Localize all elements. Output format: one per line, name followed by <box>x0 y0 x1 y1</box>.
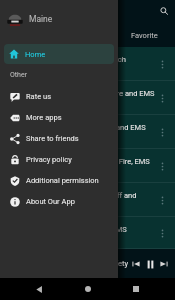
staticText: Hancock County Police and EMS <box>37 123 146 132</box>
staticText: Androscoggin County Fire and EMS <box>37 89 155 98</box>
staticText: Kennebec County Fire EMS <box>37 225 127 234</box>
button[interactable]: More apps <box>0 107 118 128</box>
button[interactable]: Home <box>4 44 114 64</box>
button[interactable]: Hancock County Police and EMS <box>0 115 175 149</box>
staticText: Penobscot County Sheriff and <box>37 191 137 200</box>
button[interactable]: More options <box>153 157 171 175</box>
staticText: Share to friends <box>26 134 79 143</box>
button[interactable]: Recents <box>127 280 145 298</box>
button[interactable]: More options <box>153 55 171 73</box>
button[interactable]: Privacy policy <box>0 149 118 170</box>
button[interactable]: About Our App <box>0 191 118 212</box>
staticText: Additional permission <box>26 176 99 185</box>
staticText: Favorite <box>131 31 158 40</box>
button[interactable]: Next <box>157 257 171 271</box>
button[interactable]: Previous <box>129 257 143 271</box>
button[interactable]: Additional permission <box>0 170 118 191</box>
button[interactable]: Search <box>157 4 170 17</box>
staticText: Other <box>10 71 28 79</box>
button[interactable]: Androscoggin Co Dispatch <box>0 47 175 81</box>
staticText: Androscoggin Co Dispatch <box>37 55 126 64</box>
button[interactable]: Penobscot County Sheriff and <box>0 183 175 217</box>
button[interactable]: Kennebec County Fire EMS <box>0 217 175 249</box>
button[interactable]: Back <box>30 280 48 298</box>
staticText: About Our App <box>26 197 75 206</box>
staticText: Rate us <box>26 92 51 101</box>
staticText: Home <box>25 50 46 59</box>
staticText: Lewiston Auburn Police, Fire, EMS <box>37 157 150 166</box>
staticText: Privacy policy <box>26 155 72 164</box>
staticText: More apps <box>26 113 62 122</box>
button[interactable]: Lewiston Auburn Police, Fire, EMS <box>0 149 175 183</box>
button[interactable]: Pause <box>143 257 157 271</box>
button[interactable]: Androscoggin County Fire and EMS <box>0 81 175 115</box>
button[interactable]: More options <box>153 224 171 242</box>
button[interactable]: Home <box>79 280 97 298</box>
button[interactable]: Share to friends <box>0 128 118 149</box>
staticText: Maine Public Safety <box>62 259 129 268</box>
button[interactable]: More options <box>153 191 171 209</box>
button[interactable]: Rate us <box>0 86 118 107</box>
button[interactable]: Favorite <box>116 24 173 47</box>
staticText: Maine <box>29 14 53 24</box>
button[interactable]: More options <box>153 89 171 107</box>
button[interactable]: More options <box>153 123 171 141</box>
